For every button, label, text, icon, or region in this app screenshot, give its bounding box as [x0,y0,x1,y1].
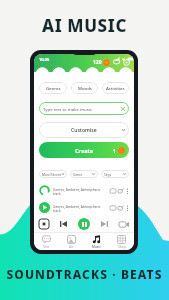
button[interactable]: Tags [101,170,129,178]
staticText: track [53,208,61,212]
button[interactable]: Type text to make music [39,102,129,115]
button[interactable]: Video [119,221,129,228]
button[interactable]: Text [34,233,59,250]
staticText: track [53,191,61,195]
button[interactable]: Genres [39,82,67,94]
staticText: Type text to make music [43,106,92,112]
button[interactable]: Image [110,205,116,211]
staticText: Customise [71,127,97,134]
staticText: Activities [106,85,125,91]
staticText: Shop [118,245,126,249]
button[interactable]: Stop [39,219,49,229]
staticText: Genres [46,85,61,91]
button[interactable]: Moods [71,82,98,94]
button[interactable]: More [126,205,129,211]
button[interactable]: Genre [70,170,98,178]
button[interactable]: Activities [102,82,129,94]
button[interactable]: Genres, Ambient, Atmospheric [39,202,129,213]
button[interactable]: Share [118,188,124,194]
button[interactable]: Image [110,188,116,194]
button[interactable]: Previous [60,221,67,227]
staticText: Create [75,147,94,154]
button[interactable]: Create [39,142,129,158]
button[interactable]: Share [118,205,124,211]
staticText: Genres, Ambient, Atmospheric [53,187,101,191]
staticText: Moods [78,85,92,91]
staticText: 1 [113,148,116,154]
button[interactable]: Next [101,221,108,227]
button[interactable]: Music [84,233,109,250]
button[interactable]: Chat [113,59,120,66]
button[interactable]: Most Recent [39,170,67,178]
staticText: Genre [73,172,83,176]
button[interactable]: Credits [103,59,110,66]
button[interactable]: Shop [109,233,134,250]
staticText: Most Recent [42,172,62,176]
button[interactable]: Art [59,233,84,250]
button[interactable]: More [126,188,129,194]
button[interactable]: Customise [39,122,129,138]
staticText: SOUNDTRACKS · BEATS [0,266,169,282]
button[interactable]: Genres, Ambient, Atmospheric [39,185,129,196]
staticText: AI MUSIC [0,14,169,37]
staticText: 120 [93,59,102,66]
staticText: Music [92,245,101,249]
button[interactable]: Settings [123,59,130,66]
staticText: Genres, Ambient, Atmospheric [53,204,101,208]
button[interactable]: Pause [78,218,90,230]
staticText: Text [43,245,50,249]
staticText: Art [69,245,74,249]
staticText: 10:35 [39,57,50,62]
staticText: Tags [104,172,112,176]
